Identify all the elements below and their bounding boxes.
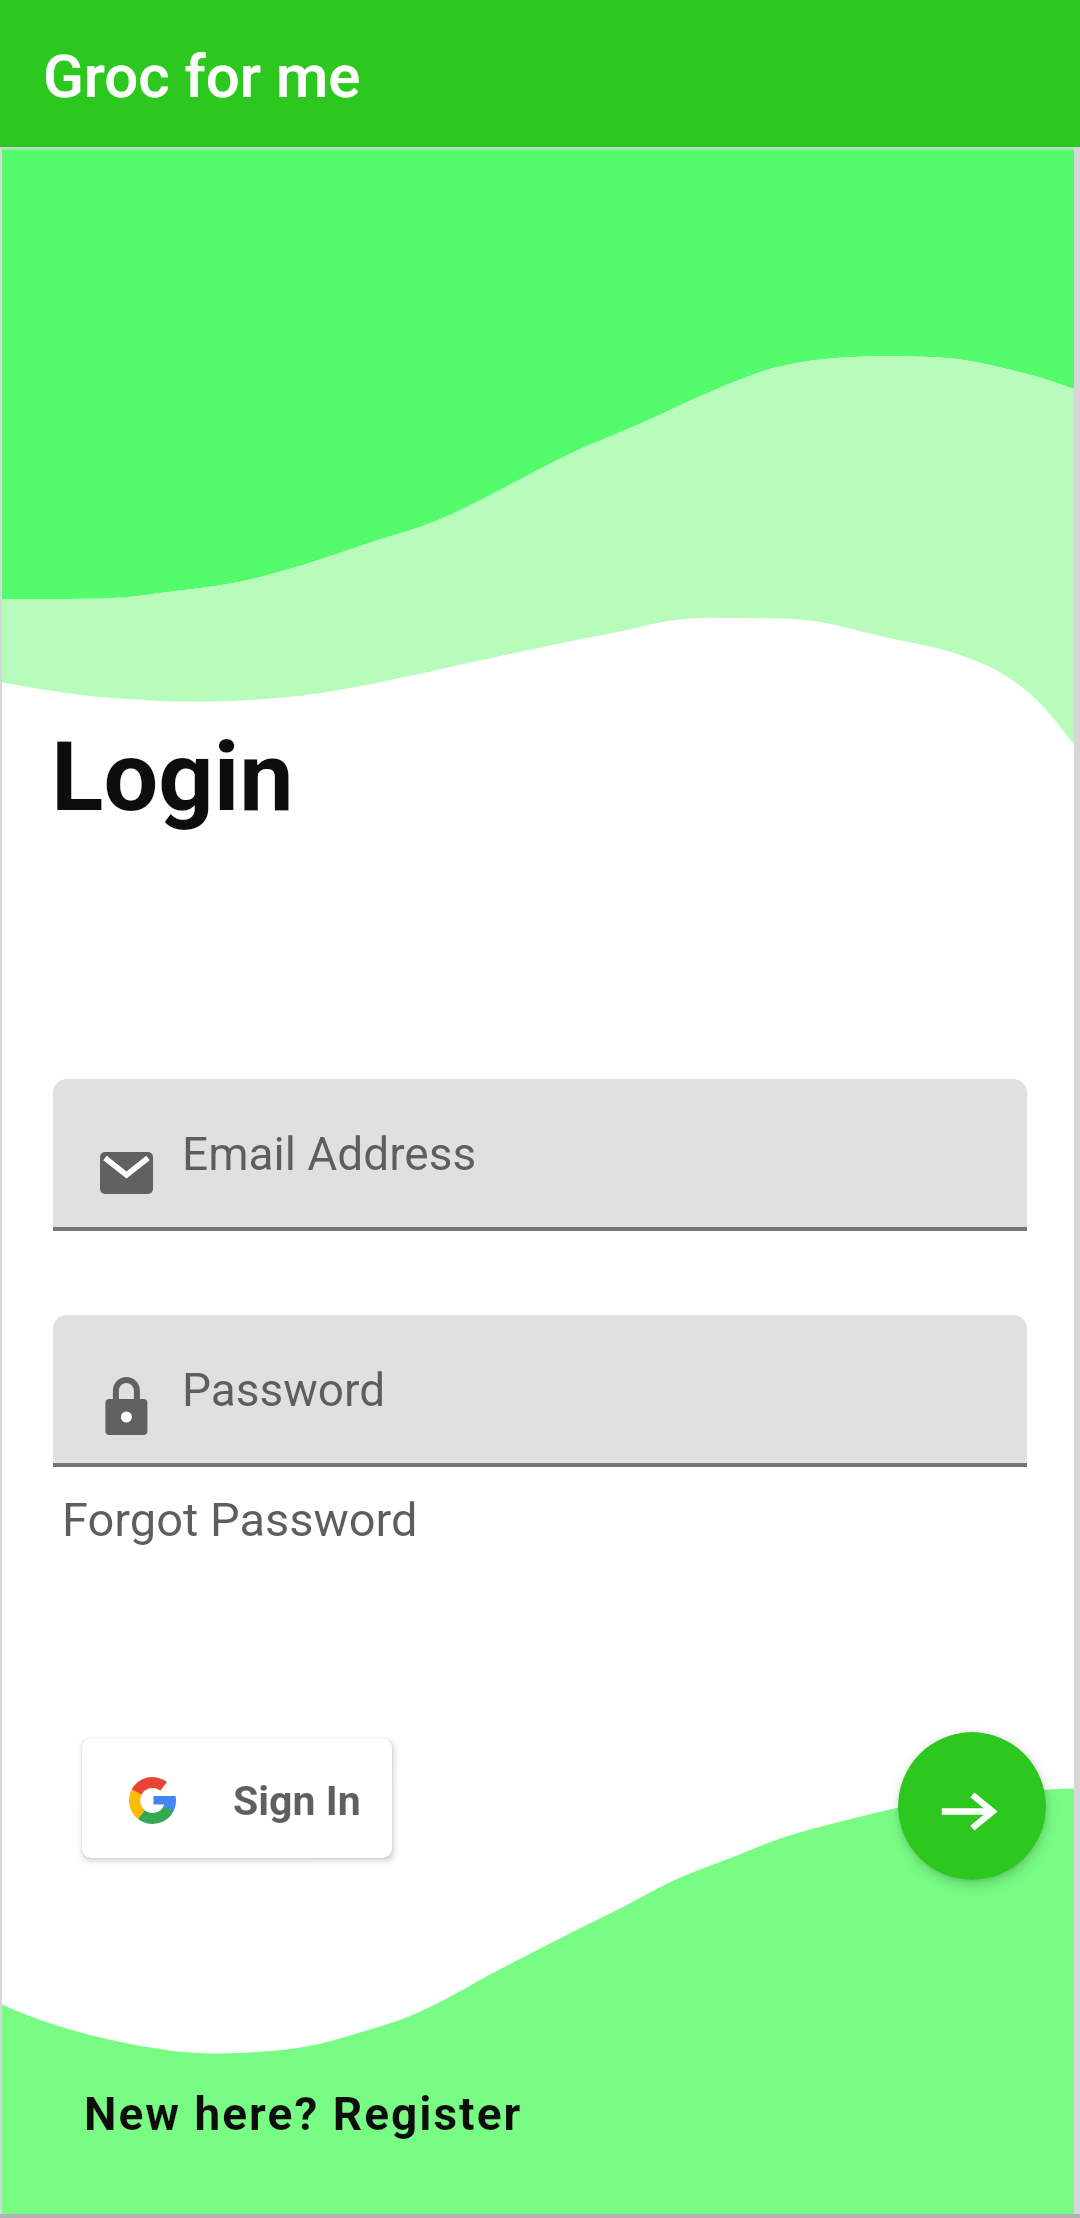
- staticText: Password: [182, 1363, 386, 1417]
- button[interactable]: Password: [53, 1315, 1027, 1467]
- button[interactable]: Email Address: [53, 1079, 1027, 1231]
- button[interactable]: Sign In: [82, 1738, 392, 1858]
- staticText: Email Address: [182, 1127, 477, 1181]
- staticText: Login: [51, 720, 294, 834]
- button[interactable]: Continue: [898, 1732, 1046, 1880]
- button[interactable]: Groc for me: [0, 0, 1080, 147]
- button[interactable]: New here? Register: [84, 2087, 523, 2141]
- staticText: Groc for me: [43, 41, 361, 111]
- button[interactable]: Forgot Password: [62, 1492, 418, 1547]
- staticText: Sign In: [233, 1777, 361, 1825]
